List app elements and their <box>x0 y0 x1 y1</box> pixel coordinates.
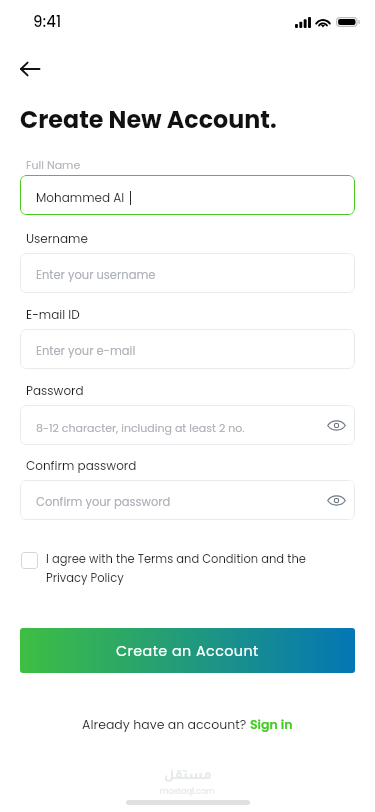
staticText: Create New Account. <box>20 103 277 136</box>
button[interactable]: Mohammed Al <box>20 175 355 215</box>
staticText: 9:41 <box>33 11 62 32</box>
staticText: Already have an account? <box>82 716 250 733</box>
staticText: Enter your username <box>36 267 156 283</box>
staticText: I agree with the Terms and Condition and… <box>46 551 314 586</box>
button[interactable]: I agree with the Terms and Condition and… <box>20 551 355 586</box>
staticText: Confirm your password <box>36 494 171 510</box>
button[interactable]: Back <box>8 47 52 91</box>
staticText: Enter your e-mail <box>36 343 136 359</box>
button[interactable]: Toggle password visibility <box>322 411 350 439</box>
staticText: Sign in <box>250 716 293 733</box>
staticText: E-mail ID <box>26 306 80 323</box>
button[interactable]: Enter your username <box>20 253 355 293</box>
staticText: Create an Account <box>116 641 259 661</box>
button[interactable]: Toggle password visibility <box>322 486 350 514</box>
staticText: Full Name <box>26 157 81 172</box>
staticText: Mohammed Al <box>36 189 125 206</box>
button[interactable]: Confirm your password <box>20 480 355 520</box>
button[interactable]: 8-12 character, including at least 2 no. <box>20 405 355 445</box>
button[interactable]: Enter your e-mail <box>20 329 355 369</box>
staticText: Confirm password <box>26 457 137 474</box>
staticText: مستقل <box>164 770 212 784</box>
staticText: mostaql.com <box>160 785 215 796</box>
staticText: 8-12 character, including at least 2 no. <box>36 420 245 435</box>
staticText: Username <box>26 230 88 247</box>
button[interactable]: Create an Account <box>20 628 355 673</box>
button[interactable]: Sign in <box>250 716 293 733</box>
staticText: Password <box>26 382 84 399</box>
